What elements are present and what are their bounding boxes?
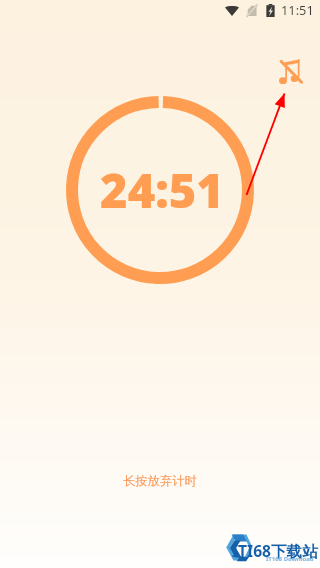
button[interactable]: 长按放弃计时: [0, 462, 320, 498]
staticText: 24:51: [100, 158, 224, 222]
staticText: ITI68下载站: [232, 540, 318, 561]
staticText: 11:51: [281, 1, 314, 18]
staticText: IT168 Download: [266, 555, 314, 563]
button[interactable]: 24:51: [66, 96, 254, 284]
button[interactable]: Mute background music: [267, 47, 315, 95]
staticText: 长按放弃计时: [123, 473, 197, 488]
